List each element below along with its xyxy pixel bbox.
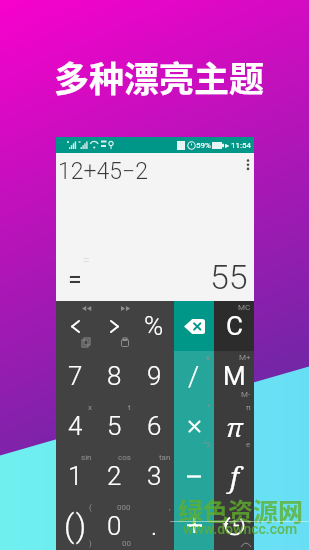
button[interactable]: π xyxy=(214,401,254,451)
staticText: tan xyxy=(159,453,171,462)
staticText: ) xyxy=(89,539,92,548)
staticText: t xyxy=(128,403,131,412)
staticText: M xyxy=(223,361,246,391)
staticText: = xyxy=(83,253,90,267)
staticText: , xyxy=(169,503,171,512)
button[interactable]: 7 xyxy=(56,351,95,401)
button[interactable]: More options xyxy=(242,157,254,173)
staticText: 多种漂亮主题 xyxy=(54,51,265,102)
staticText: M+ xyxy=(239,353,251,362)
staticText: 9 xyxy=(147,361,162,391)
staticText: e xyxy=(246,440,251,449)
button[interactable]: sin xyxy=(56,451,95,501)
button[interactable]: prev xyxy=(56,301,95,351)
staticText: ▸ 11:54 xyxy=(223,141,251,150)
staticText: π xyxy=(226,409,243,444)
staticText: 0 xyxy=(107,511,122,541)
button[interactable]: x xyxy=(56,401,95,451)
button[interactable]: times xyxy=(174,401,214,451)
staticText: www.downcc.com xyxy=(183,521,298,537)
staticText: sin xyxy=(81,453,92,462)
button[interactable]: √ xyxy=(174,351,214,401)
button[interactable]: 000 xyxy=(95,501,134,550)
staticText: 59% xyxy=(194,141,211,150)
staticText: ( xyxy=(89,503,92,512)
button[interactable]: minus xyxy=(174,451,214,501)
staticText: 55 xyxy=(210,257,248,297)
button[interactable]: ( xyxy=(56,501,95,550)
staticText: / xyxy=(188,360,200,393)
button[interactable]: cos xyxy=(95,451,134,501)
staticText: ^2 xyxy=(203,440,211,449)
staticText: 7 xyxy=(68,361,83,391)
staticText: 12+45−2 xyxy=(58,158,148,185)
button[interactable]: 6 xyxy=(134,401,174,451)
staticText: 6 xyxy=(147,411,162,441)
staticText: cos xyxy=(118,453,131,462)
staticText: √ xyxy=(206,353,211,362)
staticText: . xyxy=(151,511,158,541)
button[interactable]: plus xyxy=(174,501,214,550)
button[interactable]: 9 xyxy=(134,351,174,401)
staticText: 5 xyxy=(107,411,122,441)
staticText: MC xyxy=(238,303,251,312)
staticText: M- xyxy=(241,390,251,399)
staticText: ^ xyxy=(207,403,211,412)
staticText: π xyxy=(246,403,251,412)
staticText: 8 xyxy=(107,361,122,391)
button[interactable]: 8 xyxy=(95,351,134,401)
staticText: 000 xyxy=(117,503,131,512)
staticText: 1 xyxy=(68,461,83,491)
staticText: 3 xyxy=(147,461,162,491)
staticText: f xyxy=(230,457,239,495)
button[interactable]: M+ xyxy=(214,351,254,401)
staticText: 2 xyxy=(107,461,122,491)
staticText: = xyxy=(68,265,82,294)
staticText: 4 xyxy=(68,411,83,441)
button[interactable]: MC xyxy=(214,301,254,351)
button[interactable]: history xyxy=(214,501,254,550)
staticText: x xyxy=(88,403,92,412)
staticText: % xyxy=(144,311,164,341)
staticText: C xyxy=(226,311,243,341)
staticText: () xyxy=(64,507,88,545)
staticText: 00 xyxy=(122,539,131,548)
button[interactable]: t xyxy=(95,401,134,451)
button[interactable]: , xyxy=(134,501,174,550)
button[interactable]: next xyxy=(95,301,134,351)
button[interactable]: tan xyxy=(134,451,174,501)
button[interactable]: backspace xyxy=(174,301,214,351)
button[interactable]: % xyxy=(134,301,174,351)
staticText: 绿色资源网 xyxy=(178,492,304,528)
button[interactable]: f xyxy=(214,451,254,501)
